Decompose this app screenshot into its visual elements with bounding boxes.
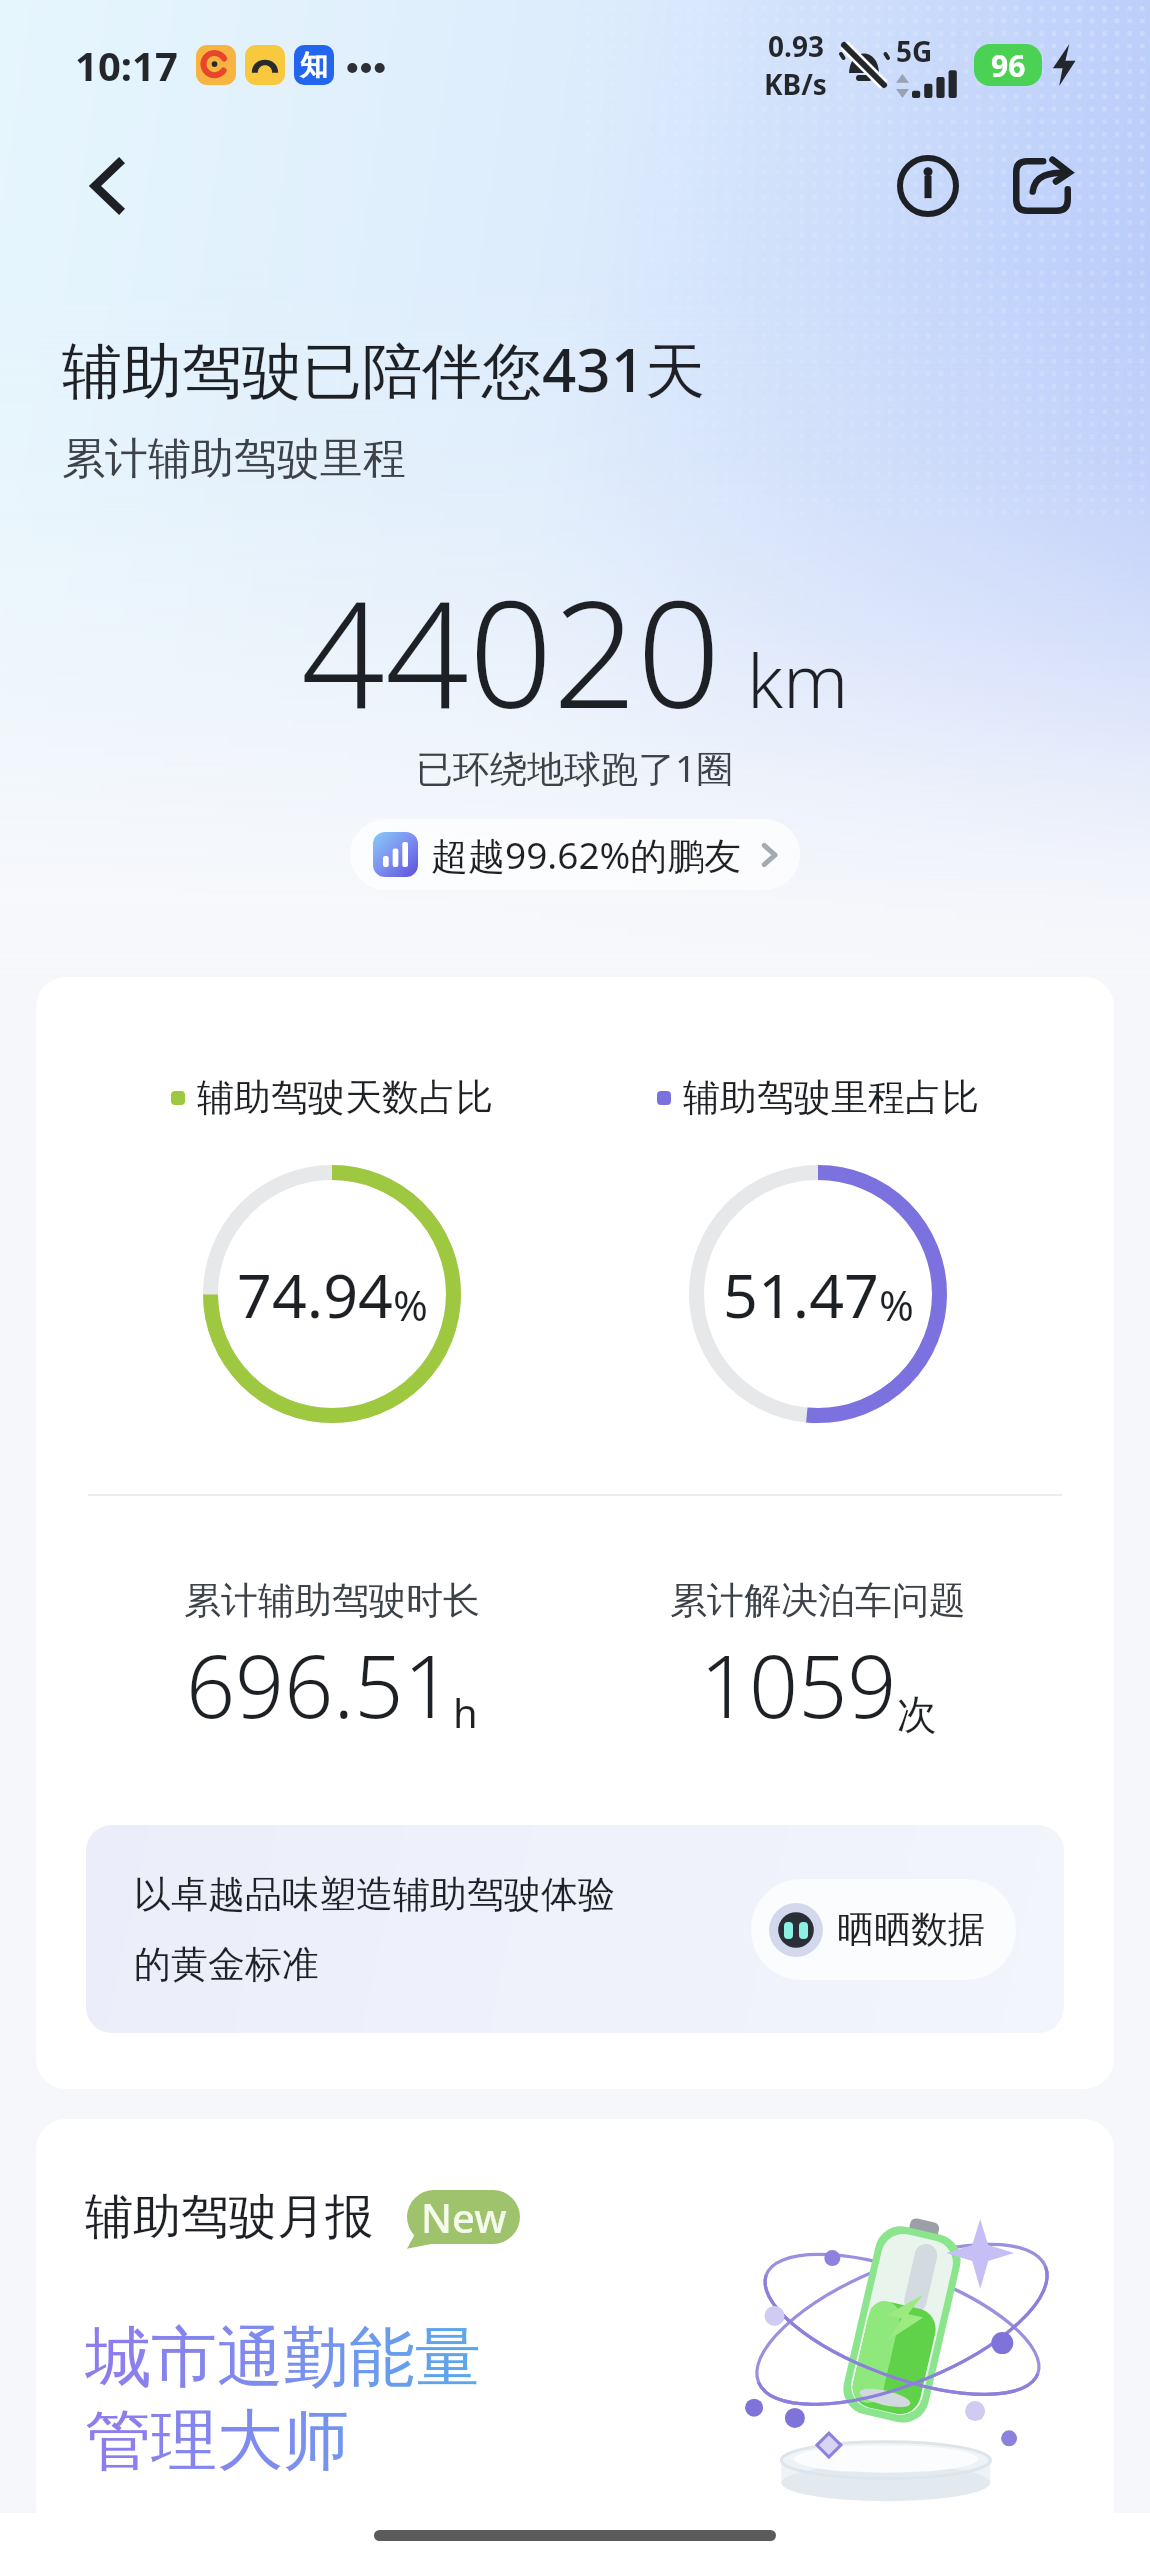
- staticText: %: [393, 1276, 428, 1333]
- staticText: 已环绕地球跑了1圈: [416, 742, 734, 793]
- staticText: 辅助驾驶月报: [85, 2187, 373, 2247]
- staticText: New: [421, 2190, 507, 2244]
- staticText: km: [747, 630, 849, 729]
- staticText: h: [453, 1685, 478, 1739]
- button[interactable]: 辅助驾驶月报: [36, 2119, 1114, 2539]
- staticText: 的黄金标准: [134, 1941, 319, 1988]
- staticText: 44020: [301, 551, 721, 751]
- button[interactable]: Info: [884, 142, 972, 230]
- staticText: 51.47: [723, 1253, 879, 1336]
- staticText: 辅助驾驶已陪伴您431天: [62, 328, 705, 410]
- staticText: 累计辅助驾驶里程: [62, 432, 406, 486]
- staticText: 次: [897, 1689, 937, 1739]
- button[interactable]: 晒晒数据: [751, 1879, 1016, 1980]
- button[interactable]: Back: [63, 142, 151, 230]
- staticText: 累计解决泊车问题: [670, 1577, 966, 1624]
- staticText: 10:17: [75, 38, 178, 92]
- staticText: KB/s: [764, 65, 827, 103]
- staticText: 累计辅助驾驶时长: [184, 1577, 480, 1624]
- button[interactable]: 超越99.62%的鹏友: [350, 819, 800, 890]
- staticText: 5G: [896, 32, 933, 70]
- staticText: 96: [991, 45, 1026, 86]
- staticText: 696.51: [186, 1626, 453, 1743]
- staticText: 以卓越品味塑造辅助驾驶体验: [134, 1871, 615, 1918]
- staticText: 城市通勤能量: [85, 2316, 481, 2399]
- staticText: %: [879, 1276, 914, 1333]
- staticText: 超越99.62%的鹏友: [431, 829, 742, 880]
- staticText: 0.93: [768, 27, 824, 65]
- staticText: 知: [300, 48, 328, 83]
- staticText: 辅助驾驶里程占比: [683, 1074, 979, 1121]
- staticText: 1059: [700, 1626, 897, 1743]
- staticText: 管理大师: [85, 2399, 349, 2482]
- staticText: 74.94: [237, 1253, 393, 1336]
- button[interactable]: Share: [998, 142, 1086, 230]
- staticText: 晒晒数据: [837, 1906, 985, 1953]
- staticText: 辅助驾驶天数占比: [197, 1074, 493, 1121]
